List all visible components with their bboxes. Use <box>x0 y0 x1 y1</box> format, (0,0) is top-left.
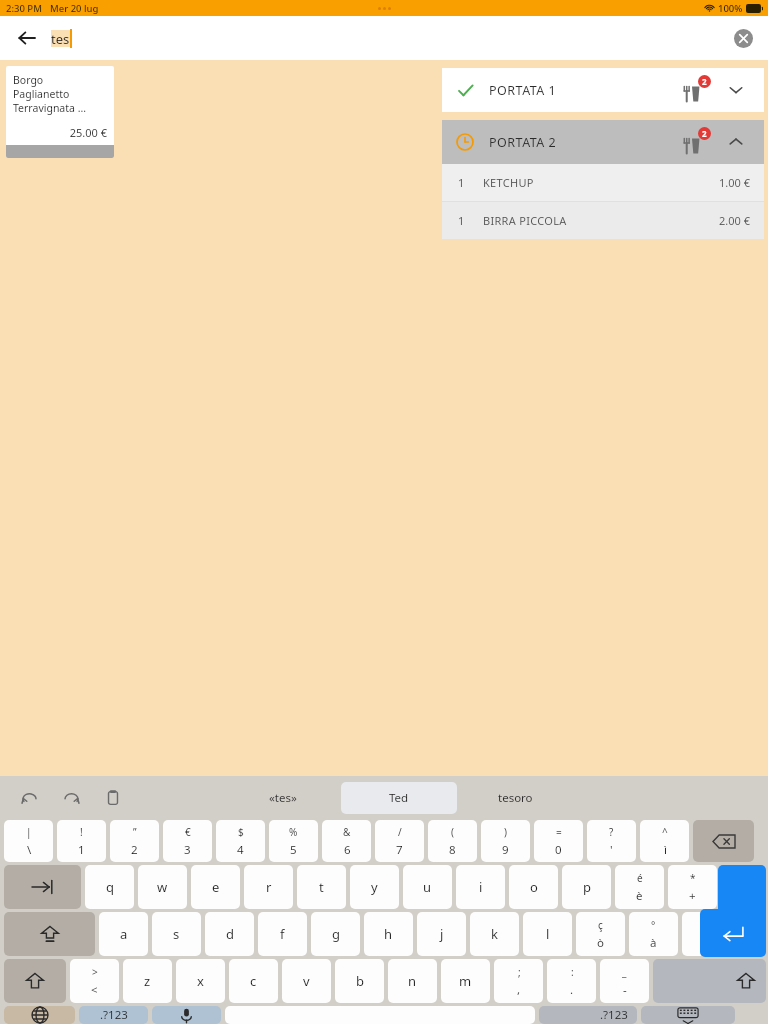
button[interactable]: z <box>123 959 172 1003</box>
button[interactable]: Back <box>8 19 46 57</box>
button[interactable]: ! <box>57 820 106 862</box>
button[interactable]: c <box>229 959 278 1003</box>
button[interactable]: ) <box>481 820 530 862</box>
button[interactable]: PORTATA 1 <box>442 68 764 112</box>
button[interactable]: k <box>470 912 519 956</box>
button[interactable]: Undo <box>16 785 42 811</box>
button[interactable]: / <box>375 820 424 862</box>
staticText: < <box>91 982 98 998</box>
button[interactable]: s <box>152 912 201 956</box>
button[interactable]: o <box>509 865 558 909</box>
button[interactable]: | <box>4 820 53 862</box>
button[interactable]: > <box>70 959 119 1003</box>
button[interactable]: Expand <box>718 72 754 108</box>
staticText: > <box>92 965 98 979</box>
button[interactable]: PORTATA 2 <box>442 120 764 164</box>
button[interactable]: p <box>562 865 611 909</box>
button[interactable]: Enter <box>718 865 766 912</box>
button[interactable]: Hide keyboard <box>641 1006 735 1024</box>
button[interactable]: Change language <box>4 1006 75 1024</box>
button[interactable]: Tab <box>4 865 81 909</box>
button[interactable]: j <box>417 912 466 956</box>
button[interactable]: ° <box>629 912 678 956</box>
button[interactable]: Enter <box>700 909 766 957</box>
button[interactable]: Symbols <box>79 1006 148 1024</box>
button[interactable]: é <box>615 865 664 909</box>
button[interactable]: Collapse <box>718 124 754 160</box>
button[interactable]: ^ <box>640 820 689 862</box>
button[interactable]: u <box>403 865 452 909</box>
button[interactable]: «tes» <box>225 783 341 813</box>
button[interactable]: & <box>322 820 371 862</box>
button[interactable]: Space <box>225 1006 535 1024</box>
staticText: f <box>280 925 285 943</box>
button[interactable]: e <box>191 865 240 909</box>
button[interactable]: € <box>163 820 212 862</box>
staticText: Paglianetto <box>13 87 70 101</box>
button[interactable]: : <box>547 959 596 1003</box>
staticText: x <box>197 972 204 990</box>
button[interactable]: l <box>523 912 572 956</box>
button[interactable]: Shift <box>4 959 66 1003</box>
button[interactable]: t <box>297 865 346 909</box>
button[interactable]: ( <box>428 820 477 862</box>
staticText: m <box>459 972 472 990</box>
staticText: ) <box>504 825 507 839</box>
button[interactable]: * <box>668 865 717 909</box>
button[interactable]: 1 <box>442 164 764 201</box>
button[interactable]: ; <box>494 959 543 1003</box>
button[interactable]: f <box>258 912 307 956</box>
staticText: v <box>303 972 310 990</box>
button[interactable]: h <box>364 912 413 956</box>
staticText: 0 <box>555 842 562 858</box>
staticText: Terravignata ... <box>13 101 87 115</box>
button[interactable]: r <box>244 865 293 909</box>
button[interactable]: x <box>176 959 225 1003</box>
button[interactable]: ” <box>110 820 159 862</box>
button[interactable]: Caps lock <box>4 912 95 956</box>
button[interactable]: % <box>269 820 318 862</box>
staticText: .?123 <box>600 1007 628 1023</box>
button[interactable]: ? <box>587 820 636 862</box>
button[interactable]: v <box>282 959 331 1003</box>
button[interactable]: Servings <box>678 72 714 108</box>
button[interactable]: n <box>388 959 437 1003</box>
button[interactable]: ç <box>576 912 625 956</box>
staticText: ! <box>80 825 83 839</box>
staticText: PORTATA 2 <box>489 134 557 151</box>
button[interactable]: Shift <box>653 959 766 1003</box>
staticText: 2 <box>702 76 707 87</box>
button[interactable]: tesoro <box>457 783 573 813</box>
staticText: , <box>517 982 521 998</box>
button[interactable]: w <box>138 865 187 909</box>
staticText: € <box>185 825 191 839</box>
staticText: PORTATA 1 <box>489 82 557 99</box>
button[interactable]: _ <box>600 959 649 1003</box>
button[interactable]: Redo <box>58 785 84 811</box>
staticText: 5 <box>290 842 297 858</box>
button[interactable]: Clear <box>726 21 760 55</box>
button[interactable]: § <box>682 912 731 956</box>
button[interactable]: q <box>85 865 134 909</box>
staticText: 9 <box>502 842 509 858</box>
button[interactable]: Ted <box>341 782 457 814</box>
button[interactable]: Voice input <box>152 1006 221 1024</box>
button[interactable]: a <box>99 912 148 956</box>
button[interactable]: $ <box>216 820 265 862</box>
button[interactable]: Borgo <box>6 66 114 158</box>
button[interactable]: g <box>311 912 360 956</box>
button[interactable]: = <box>534 820 583 862</box>
button[interactable]: y <box>350 865 399 909</box>
button[interactable]: Backspace <box>693 820 754 862</box>
button[interactable]: i <box>456 865 505 909</box>
button[interactable]: Servings <box>678 124 714 160</box>
button[interactable]: d <box>205 912 254 956</box>
button[interactable]: m <box>441 959 490 1003</box>
button[interactable]: Symbols <box>539 1006 637 1024</box>
staticText: + <box>689 888 696 904</box>
staticText: r <box>266 878 272 896</box>
button[interactable]: 1 <box>442 202 764 239</box>
button[interactable]: b <box>335 959 384 1003</box>
staticText: 1.00 € <box>719 175 750 190</box>
button[interactable]: Paste <box>100 785 126 811</box>
